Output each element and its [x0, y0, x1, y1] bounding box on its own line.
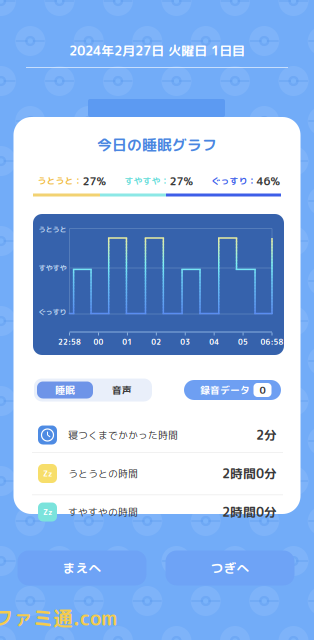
button[interactable]: Zz [32, 501, 283, 522]
staticText: 01 [122, 337, 132, 347]
staticText: すやすや [38, 263, 66, 273]
staticText: 録音データ [200, 383, 250, 397]
staticText: 今日の睡眠グラフ [97, 135, 217, 155]
button[interactable]: 睡眠 [37, 381, 93, 398]
staticText: 06:58 [260, 337, 283, 347]
staticText: Zz [43, 468, 52, 479]
staticText: 2時間0分 [222, 465, 277, 482]
staticText: 04 [209, 337, 219, 347]
staticText: ぐっすり： [211, 175, 256, 187]
staticText: 46% [256, 173, 280, 189]
button[interactable]: まえへ [17, 550, 146, 585]
staticText: ファミ通.com [0, 604, 117, 632]
staticText: 寝つくまでかかった時間 [68, 428, 178, 442]
staticText: 22:58 [58, 337, 81, 347]
staticText: うとうと [38, 224, 66, 234]
staticText: 2時間0分 [222, 503, 277, 521]
button[interactable]: 録音データ [184, 380, 281, 400]
staticText: 00 [93, 337, 103, 347]
staticText: すやすや： [124, 175, 169, 187]
staticText: うとうとの時間 [68, 467, 138, 480]
staticText: すやすやの時間 [68, 505, 138, 519]
staticText: 27% [169, 173, 193, 189]
staticText: 27% [82, 173, 106, 189]
staticText: 03 [180, 337, 190, 347]
button[interactable]: 音声 [94, 381, 150, 398]
staticText: 音声 [112, 383, 132, 397]
staticText: 2分 [256, 426, 277, 444]
button[interactable]: 寝つくまでかかった時間 [32, 424, 283, 445]
staticText: まえへ [62, 559, 101, 577]
staticText: うとうと： [37, 175, 82, 187]
staticText: 02 [151, 337, 161, 347]
staticText: Zz [43, 506, 52, 518]
button[interactable]: Zz [32, 463, 283, 484]
staticText: 睡眠 [55, 383, 75, 397]
staticText: つぎへ [210, 559, 249, 577]
button[interactable]: つぎへ [165, 550, 294, 585]
staticText: 05 [238, 337, 248, 347]
staticText: 2024年2月27日 火曜日 1日目 [69, 41, 245, 60]
staticText: ぐっすり [38, 307, 66, 317]
staticText: 0 [259, 383, 265, 397]
